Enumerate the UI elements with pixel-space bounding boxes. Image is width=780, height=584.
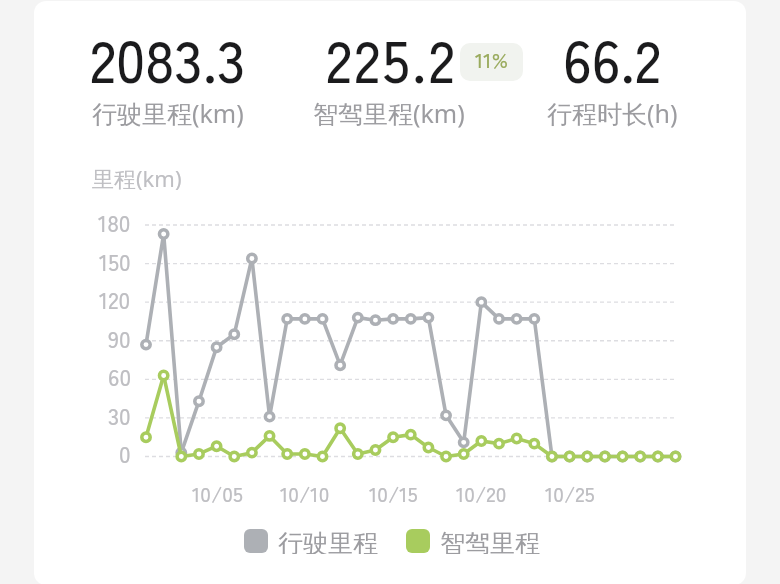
- button[interactable]: 11%: [460, 43, 523, 81]
- staticText: 0: [119, 436, 131, 466]
- button[interactable]: 智驾里程: [406, 528, 540, 554]
- staticText: 10/10: [280, 478, 330, 504]
- staticText: 120: [99, 282, 131, 312]
- staticText: 行驶里程: [278, 528, 378, 554]
- staticText: 60: [108, 359, 131, 389]
- staticText: 180: [98, 205, 131, 235]
- button[interactable]: 66.2: [482, 16, 742, 134]
- staticText: 行驶里程(km): [92, 96, 244, 130]
- staticText: 90: [108, 321, 131, 351]
- staticText: 智驾里程: [440, 528, 540, 554]
- staticText: 30: [108, 398, 131, 428]
- staticText: 2083.3: [90, 16, 246, 100]
- staticText: 11%: [475, 44, 508, 74]
- button[interactable]: 2083.3: [38, 16, 298, 134]
- staticText: 行程时长(h): [547, 96, 678, 130]
- button[interactable]: 行驶里程: [244, 528, 378, 554]
- staticText: 智驾里程(km): [313, 96, 465, 130]
- staticText: 10/15: [369, 478, 418, 504]
- staticText: 10/25: [545, 478, 595, 504]
- staticText: 里程(km): [92, 163, 182, 193]
- staticText: 225.2: [326, 16, 458, 100]
- button[interactable]: 225.2: [263, 16, 523, 134]
- staticText: 10/05: [192, 478, 243, 504]
- staticText: 66.2: [563, 16, 661, 100]
- staticText: 150: [99, 244, 131, 274]
- staticText: 10/20: [456, 478, 507, 504]
